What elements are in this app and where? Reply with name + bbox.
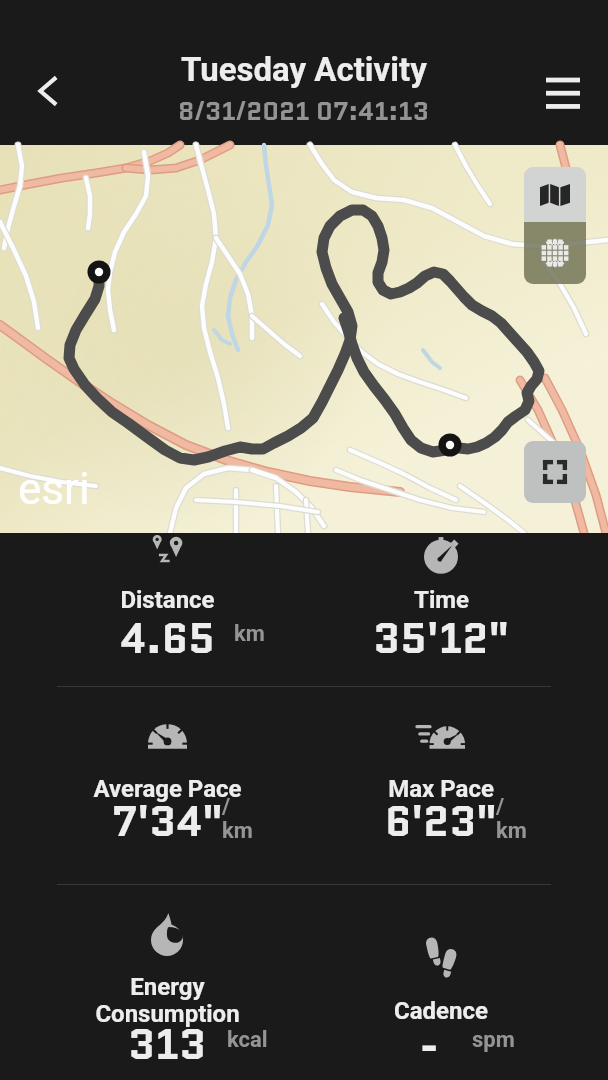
staticText: Energy Consumption	[95, 973, 240, 1027]
button[interactable]: Energy Consumption	[30, 533, 304, 1080]
staticText: 8/31/2021 07:41:13	[178, 93, 430, 129]
button[interactable]: Satellite view	[524, 222, 586, 284]
staticText: / km	[222, 794, 253, 843]
button[interactable]: Cadence	[304, 533, 578, 1080]
staticText: Average Pace	[93, 775, 242, 803]
button[interactable]: Distance	[30, 533, 304, 1080]
staticText: Distance	[120, 586, 215, 614]
staticText: 6'23"	[385, 792, 497, 851]
button[interactable]: Time	[304, 533, 578, 1080]
staticText: Time	[414, 586, 469, 614]
staticText: -	[420, 1015, 439, 1074]
button[interactable]: Max Pace	[304, 533, 578, 1080]
staticText: 4.65	[120, 609, 215, 668]
staticText: Tuesday Activity	[181, 50, 427, 89]
button[interactable]: Average Pace	[30, 533, 304, 1080]
button[interactable]: Back	[18, 60, 80, 122]
staticText: Max Pace	[388, 775, 494, 803]
staticText: 313	[128, 1015, 206, 1074]
staticText: esri	[18, 463, 90, 515]
staticText: spm	[472, 1027, 515, 1053]
staticText: 7'34"	[112, 792, 223, 851]
staticText: / km	[496, 794, 527, 843]
button[interactable]: Menu	[532, 60, 594, 122]
staticText: km	[234, 621, 265, 647]
staticText: kcal	[227, 1027, 268, 1053]
button[interactable]: Fullscreen	[524, 441, 586, 503]
staticText: 35'12"	[373, 609, 509, 668]
button[interactable]: Map view	[524, 167, 586, 222]
staticText: Cadence	[394, 997, 488, 1025]
